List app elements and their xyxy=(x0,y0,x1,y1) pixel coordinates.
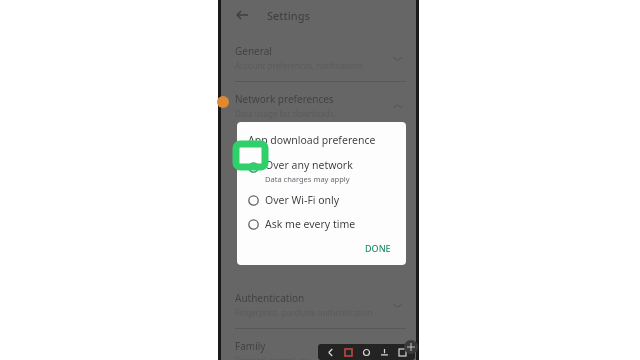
staticText: Authentication xyxy=(235,291,305,305)
button[interactable]: Download xyxy=(379,347,390,358)
staticText: Family xyxy=(235,339,266,353)
staticText: Over any network xyxy=(265,158,353,172)
button[interactable]: Network preferences xyxy=(221,92,416,119)
button[interactable]: Over Wi-Fi only xyxy=(237,193,406,207)
staticText: Settings xyxy=(267,8,310,23)
staticText: Network preferences xyxy=(235,92,334,106)
button[interactable]: Stop recording xyxy=(343,347,354,358)
staticText: Data charges may apply xyxy=(265,174,350,184)
staticText: DONE xyxy=(365,242,391,254)
button[interactable]: Expand xyxy=(390,343,404,357)
staticText: Data usage for downloads, xyxy=(235,108,336,119)
button[interactable]: DONE xyxy=(361,240,395,256)
staticText: Over Wi-Fi only xyxy=(265,193,340,207)
button[interactable]: Over any network xyxy=(237,158,406,184)
button[interactable]: General xyxy=(221,44,416,71)
button[interactable]: Authentication xyxy=(221,291,416,318)
button[interactable]: Back xyxy=(233,6,251,24)
button[interactable]: Recorder toolbar xyxy=(318,344,415,360)
staticText: General xyxy=(235,44,272,58)
button[interactable]: Home xyxy=(361,347,372,358)
button[interactable]: Family xyxy=(221,339,416,360)
button[interactable]: Back xyxy=(325,347,336,358)
button[interactable]: Move toolbar xyxy=(404,340,418,354)
staticText: App download preference xyxy=(248,133,376,147)
staticText: Ask me every time xyxy=(265,217,356,231)
staticText: Fingerprint, purchase authentication xyxy=(235,307,373,318)
button[interactable]: Back xyxy=(221,0,416,30)
staticText: Account preferences, notifications xyxy=(235,60,363,71)
button[interactable]: Screenshot xyxy=(397,347,408,358)
button[interactable]: Ask me every time xyxy=(237,217,406,231)
